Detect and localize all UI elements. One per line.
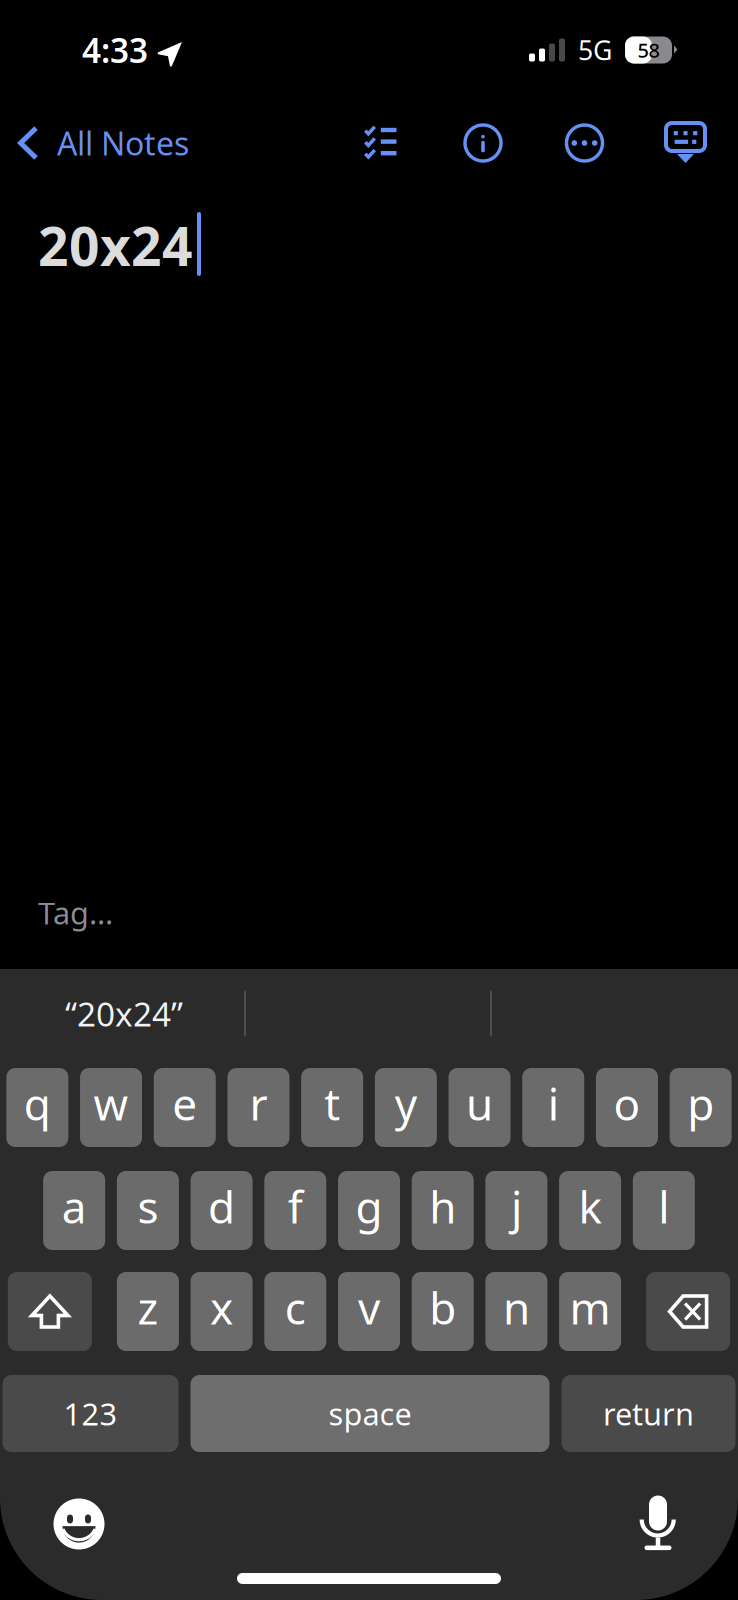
staticText: y — [395, 1074, 417, 1133]
staticText: e — [172, 1074, 197, 1133]
button[interactable]: y — [375, 1068, 437, 1147]
button[interactable]: p — [670, 1068, 732, 1147]
button[interactable]: d — [191, 1171, 253, 1250]
staticText: z — [137, 1278, 158, 1337]
staticText: 5G — [578, 32, 612, 68]
button[interactable]: e — [154, 1068, 216, 1147]
button[interactable]: q — [6, 1068, 68, 1147]
staticText: d — [208, 1177, 235, 1236]
button[interactable]: o — [596, 1068, 658, 1147]
staticText: space — [328, 1393, 411, 1434]
button[interactable]: s — [117, 1171, 179, 1250]
button[interactable]: w — [80, 1068, 142, 1147]
button[interactable]: m — [559, 1272, 621, 1351]
button[interactable]: Delete — [646, 1272, 730, 1351]
staticText: s — [137, 1177, 158, 1236]
staticText: 123 — [63, 1393, 117, 1434]
staticText: x — [210, 1278, 233, 1337]
button[interactable]: Dictate — [603, 1486, 713, 1562]
button[interactable]: All Notes — [0, 100, 205, 186]
staticText: a — [62, 1177, 87, 1236]
staticText: v — [358, 1278, 380, 1337]
staticText: o — [613, 1074, 640, 1133]
button[interactable]: Hide Keyboard — [635, 100, 736, 186]
staticText: c — [285, 1278, 306, 1337]
button[interactable]: h — [412, 1171, 474, 1250]
button[interactable]: f — [264, 1171, 326, 1250]
button[interactable]: b — [412, 1272, 474, 1351]
button[interactable]: u — [449, 1068, 511, 1147]
button[interactable]: Info — [432, 100, 534, 186]
staticText: 20x24 — [38, 210, 193, 281]
button[interactable]: j — [485, 1171, 547, 1250]
button[interactable]: x — [191, 1272, 253, 1351]
staticText: 58 — [637, 37, 659, 63]
button[interactable]: t — [301, 1068, 363, 1147]
staticText: n — [503, 1278, 530, 1337]
staticText: “20x24” — [65, 991, 183, 1036]
button[interactable]: v — [338, 1272, 400, 1351]
button[interactable]: space — [190, 1375, 549, 1452]
staticText: r — [249, 1074, 267, 1133]
button[interactable]: 123 — [2, 1375, 178, 1452]
staticText: t — [324, 1074, 340, 1133]
staticText: k — [579, 1177, 602, 1236]
staticText: Tag... — [38, 892, 113, 933]
button[interactable]: a — [43, 1171, 105, 1250]
button[interactable]: i — [522, 1068, 584, 1147]
button[interactable]: Checklist — [330, 100, 432, 186]
staticText: q — [24, 1074, 51, 1133]
button[interactable]: k — [559, 1171, 621, 1250]
button[interactable]: Emoji — [24, 1486, 134, 1562]
staticText: h — [429, 1177, 456, 1236]
button[interactable]: More — [534, 100, 635, 186]
staticText: f — [288, 1177, 303, 1236]
button[interactable]: return — [561, 1375, 735, 1452]
staticText: l — [658, 1177, 669, 1236]
staticText: return — [603, 1393, 694, 1434]
staticText: g — [355, 1177, 382, 1236]
button[interactable]: Shift — [8, 1272, 92, 1351]
button[interactable]: “20x24” — [7, 969, 241, 1058]
button[interactable]: n — [485, 1272, 547, 1351]
staticText: m — [570, 1278, 611, 1337]
staticText: j — [511, 1177, 522, 1236]
staticText: i — [548, 1074, 559, 1133]
button[interactable]: l — [633, 1171, 695, 1250]
button[interactable]: z — [117, 1272, 179, 1351]
staticText: All Notes — [57, 122, 189, 164]
staticText: w — [94, 1074, 129, 1133]
staticText: u — [466, 1074, 493, 1133]
staticText: b — [429, 1278, 456, 1337]
button[interactable]: c — [264, 1272, 326, 1351]
staticText: 4:33 — [82, 28, 148, 72]
button[interactable]: g — [338, 1171, 400, 1250]
staticText: p — [687, 1074, 714, 1133]
button[interactable]: r — [227, 1068, 289, 1147]
